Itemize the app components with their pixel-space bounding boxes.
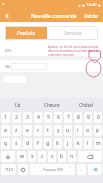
staticText: s [15,140,18,147]
staticText: 9 [87,114,90,121]
staticText: 8 [77,114,80,121]
button[interactable]: y [54,125,62,136]
staticText: p [96,127,100,134]
button[interactable]: 5 [44,112,52,123]
staticText: k [77,140,80,147]
button[interactable]: Valider [84,9,99,22]
button[interactable]: j [64,138,72,149]
button[interactable]: h [54,138,62,149]
staticText: f [37,140,39,147]
button[interactable]: 6 [54,112,62,123]
staticText: . [81,166,83,173]
button[interactable]: Produits [5,26,47,40]
button[interactable]: l [84,138,92,149]
button[interactable]: 7 [64,112,72,123]
button[interactable]: v [48,151,56,162]
staticText: 12:45 [86,2,97,8]
staticText: r [37,127,40,134]
staticText: z [15,127,18,134]
button[interactable]: Backspace [78,151,102,162]
button[interactable]: u [64,125,72,136]
button[interactable]: d [23,138,32,149]
button[interactable]: k [74,138,82,149]
button[interactable]: ?123 [1,164,16,175]
button[interactable]: r [34,125,42,136]
button[interactable]: Lb [0,98,35,111]
staticText: c [41,153,44,160]
button[interactable]: t [44,125,52,136]
button[interactable]: 4 [34,112,42,123]
staticText: Ajouter un article qui n'apparait pas da… [48,45,99,57]
staticText: ?123 [5,167,13,172]
button[interactable]: z [12,125,21,136]
button[interactable]: a [1,125,10,136]
staticText: b [60,153,64,160]
staticText: 7 [67,114,70,121]
button[interactable]: i [74,125,82,136]
button[interactable]: 8 [74,112,82,123]
button[interactable]: 9 [84,112,92,123]
button[interactable]: e [23,125,32,136]
staticText: 0 [97,114,100,121]
staticText: Nb [5,64,11,69]
staticText: x [31,153,34,160]
staticText: q [4,140,8,147]
staticText: Cheure [44,102,60,108]
staticText: Valider [84,13,99,19]
staticText: o [86,127,90,134]
staticText: 4 [37,114,40,121]
staticText: Français (FR) [43,167,63,172]
button[interactable]: 1 [1,112,10,123]
button[interactable]: Back [0,9,13,22]
button[interactable]: Cheure [35,98,69,111]
button[interactable]: . [77,164,86,175]
button[interactable]: Français (FR) [30,164,75,175]
staticText: v [51,153,54,160]
staticText: t [47,127,49,134]
button[interactable]: c [38,151,46,162]
button[interactable]: p [94,125,102,136]
button[interactable] [11,63,47,70]
button[interactable]: 0 [94,112,102,123]
button[interactable]: w [17,151,26,162]
button[interactable]: s [12,138,21,149]
staticText: e [26,127,29,134]
staticText: i [77,127,79,134]
staticText: y [57,127,60,134]
staticText: Services [64,30,82,36]
staticText: n [70,153,74,160]
staticText: 3 [26,114,29,121]
staticText: a [4,127,7,134]
button[interactable]: n [68,151,76,162]
button[interactable]: Shift [1,151,15,162]
staticText: 6 [57,114,60,121]
button[interactable]: q [1,138,10,149]
staticText: Lb [15,102,21,108]
staticText: Produits [17,30,36,36]
button[interactable]: f [34,138,42,149]
button[interactable]: Enter [88,164,102,175]
staticText: 1 [4,114,7,121]
button[interactable]: Services [47,26,98,40]
staticText: h [56,140,60,147]
button[interactable]: g [44,138,52,149]
staticText: Chôtel [79,102,93,108]
staticText: j [67,140,69,147]
staticText: u [66,127,70,134]
button[interactable]: m [94,138,102,149]
staticText: XXL [5,48,12,53]
button[interactable]: o [84,125,92,136]
button[interactable]: b [58,151,66,162]
button[interactable]: x [28,151,36,162]
button[interactable]: 2 [12,112,21,123]
staticText: 5 [47,114,50,121]
staticText: l [87,140,89,147]
button[interactable]: 3 [23,112,32,123]
staticText: w [20,153,24,160]
button[interactable]: Chôtel [69,98,103,111]
staticText: Nouvelle commande [31,13,77,19]
staticText: d [26,140,30,147]
button[interactable]: Emoji [18,164,28,175]
staticText: g [46,140,50,147]
